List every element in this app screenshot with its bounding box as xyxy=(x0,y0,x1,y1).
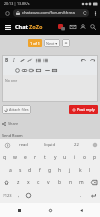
staticText: 1 of 1 xyxy=(30,41,40,46)
button[interactable]: j xyxy=(65,164,75,176)
staticText: x xyxy=(27,179,30,186)
staticText: B xyxy=(5,57,9,64)
button[interactable]: , xyxy=(14,188,24,203)
button[interactable]: f xyxy=(35,164,45,176)
button[interactable]: d xyxy=(25,164,35,176)
button[interactable]: Search xyxy=(88,22,98,32)
button[interactable]: I xyxy=(10,57,17,64)
button[interactable]: Bullet list xyxy=(35,57,42,64)
button[interactable]: Alerts xyxy=(56,22,66,32)
button[interactable]: v xyxy=(43,176,54,188)
button[interactable]: Link xyxy=(19,57,26,64)
button[interactable]: liquid xyxy=(36,139,63,151)
button[interactable]: Back xyxy=(74,203,88,217)
staticText: h xyxy=(58,167,62,174)
staticText: w xyxy=(13,154,17,161)
button[interactable]: Account xyxy=(78,22,88,32)
button[interactable]: Recents xyxy=(12,203,26,217)
button[interactable]: r xyxy=(30,151,40,164)
button[interactable]: ?123 xyxy=(0,188,14,203)
button[interactable]: g xyxy=(45,164,55,176)
staticText: 22 xyxy=(74,142,79,148)
button[interactable]: Unlink xyxy=(26,57,33,64)
button[interactable]: p xyxy=(90,151,100,164)
button[interactable]: x xyxy=(23,176,33,188)
button[interactable]: a xyxy=(5,164,15,176)
staticText: . xyxy=(80,192,82,199)
button[interactable]: Undo xyxy=(80,57,87,64)
button[interactable]: q xyxy=(0,151,10,164)
button[interactable]: i xyxy=(70,151,80,164)
staticText: v xyxy=(47,179,50,186)
button[interactable]: h xyxy=(55,164,65,176)
button[interactable]: Keyboard settings xyxy=(90,140,100,150)
button[interactable]: 22 xyxy=(63,139,90,151)
button[interactable]: Home xyxy=(3,9,11,17)
button[interactable]: More options xyxy=(91,9,99,17)
staticText: ZoZo xyxy=(29,23,43,31)
button[interactable]: Quote xyxy=(35,67,42,74)
button[interactable]: c xyxy=(33,176,43,188)
staticText: f xyxy=(39,167,41,174)
staticText: m xyxy=(79,179,84,186)
button[interactable]: Post reply xyxy=(69,105,98,114)
button[interactable]: l xyxy=(85,164,95,176)
button[interactable]: read xyxy=(10,139,36,151)
button[interactable]: Expand toolbar xyxy=(4,142,10,148)
button[interactable]: Media xyxy=(21,67,28,74)
staticText: r xyxy=(34,154,37,161)
button[interactable]: Enter xyxy=(86,188,100,203)
button[interactable]: Next ▾ xyxy=(44,39,60,47)
button[interactable]: Inbox xyxy=(68,22,78,32)
staticText: z xyxy=(17,179,20,186)
button[interactable]: m xyxy=(76,176,87,188)
button[interactable]: Redo xyxy=(89,57,96,64)
staticText: s xyxy=(19,167,22,174)
staticText: chatzozo.com/forum/threa xyxy=(22,10,75,16)
button[interactable]: More xyxy=(51,67,58,74)
staticText: o xyxy=(83,154,87,161)
staticText: p xyxy=(93,154,97,161)
button[interactable]: More xyxy=(62,39,70,47)
button[interactable]: Attach files xyxy=(2,105,31,114)
button[interactable]: b xyxy=(54,176,65,188)
button[interactable]: n xyxy=(65,176,76,188)
button[interactable]: t xyxy=(40,151,50,164)
button[interactable]: Numbered list xyxy=(42,57,49,64)
button[interactable]: k xyxy=(75,164,85,176)
staticText: liquid xyxy=(44,142,55,148)
button[interactable]: Backspace xyxy=(87,176,100,188)
button[interactable]: Home xyxy=(43,203,57,217)
staticText: l xyxy=(89,167,91,174)
staticText: j xyxy=(69,167,71,174)
staticText: a xyxy=(9,167,12,174)
button[interactable]: Menu xyxy=(2,21,14,33)
staticText: d xyxy=(28,167,32,174)
staticText: i xyxy=(74,154,76,161)
button[interactable]: o xyxy=(80,151,90,164)
button[interactable]: Horizontal rule xyxy=(44,67,51,74)
button[interactable]: z xyxy=(13,176,23,188)
button[interactable]: Share xyxy=(2,120,98,127)
button[interactable]: 1 of 1 xyxy=(28,39,42,47)
staticText: No one xyxy=(5,78,18,83)
button[interactable]: Video xyxy=(28,67,35,74)
button[interactable]: Emoji xyxy=(24,188,33,203)
button[interactable]: u xyxy=(60,151,70,164)
button[interactable]: e xyxy=(20,151,30,164)
button[interactable]: . xyxy=(76,188,86,203)
staticText: c xyxy=(37,179,40,186)
button[interactable]: B xyxy=(3,57,10,64)
button[interactable]: y xyxy=(50,151,60,164)
button[interactable]: chatzozo.com/forum/threa xyxy=(13,9,89,17)
staticText: Chat xyxy=(15,23,29,31)
staticText: q xyxy=(3,154,7,161)
staticText: u xyxy=(63,154,67,161)
staticText: k xyxy=(79,167,82,174)
staticText: I xyxy=(13,57,15,64)
button[interactable]: Shift xyxy=(0,176,13,188)
button[interactable]: s xyxy=(15,164,25,176)
button[interactable]: w xyxy=(10,151,20,164)
button[interactable]: Emoji xyxy=(14,67,21,74)
